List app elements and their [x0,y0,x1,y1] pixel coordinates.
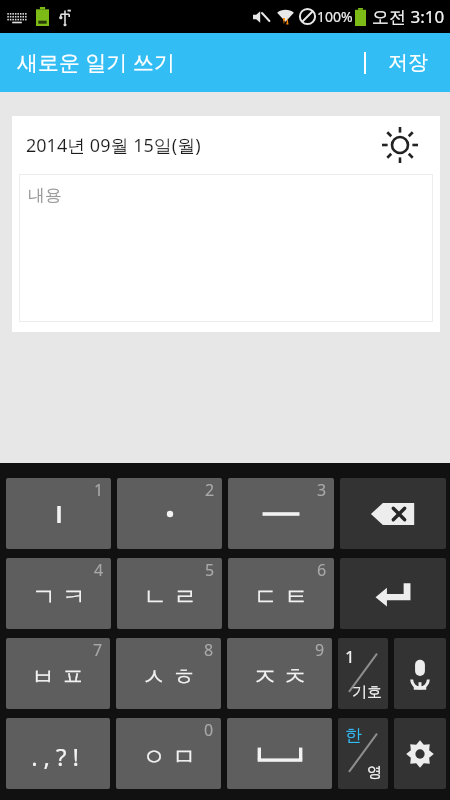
button[interactable]: 내용 [19,174,433,322]
staticText: 3 [317,479,327,501]
button[interactable]: 날씨 선택 [378,123,422,167]
staticText: 7 [93,639,103,661]
staticText: 오전 3:10 [372,5,445,28]
button[interactable]: 6 [228,558,334,629]
staticText: 4 [94,559,104,581]
staticText: 6 [317,559,327,581]
button[interactable]: 1 [6,478,111,549]
staticText: 2014년 09월 15일(월) [26,133,201,158]
button[interactable]: 저장 [366,36,450,89]
staticText: 1 [94,479,104,501]
button[interactable]: Settings [394,718,446,789]
button[interactable]: 0 [116,718,221,789]
staticText: 8 [204,639,214,661]
staticText: ㄴㄹ [140,582,200,612]
staticText: 저장 [388,50,428,75]
staticText: .,?! [31,740,85,773]
button[interactable]: Backspace [340,478,446,549]
staticText: ㅅㅎ [139,662,199,692]
button[interactable]: 1 [338,638,388,709]
staticText: 5 [205,559,215,581]
button[interactable]: Voice input [394,638,446,709]
staticText: 한 [345,725,362,746]
staticText: ㅂㅍ [28,662,88,692]
button[interactable]: 5 [117,558,222,629]
staticText: 내용 [28,185,62,206]
staticText: 1 [345,645,355,668]
staticText: 영 [367,763,382,782]
staticText: 9 [315,639,325,661]
staticText: 새로운 일기 쓰기 [17,48,175,77]
button[interactable]: Space [227,718,332,789]
staticText: 2 [205,479,215,501]
button[interactable]: 7 [6,638,110,709]
staticText: ㄱㅋ [29,582,89,612]
button[interactable]: 한 [338,718,388,789]
staticText: ㅈㅊ [250,662,310,692]
staticText: ㄷㅌ [251,582,311,612]
staticText: 기호 [352,683,382,702]
button[interactable]: 3 [228,478,334,549]
button[interactable]: .,?! [6,718,110,789]
button[interactable]: 8 [116,638,221,709]
staticText: ㅇㅁ [139,742,199,772]
staticText: 100% [317,7,353,26]
button[interactable]: 9 [227,638,332,709]
button[interactable]: 2 [117,478,222,549]
staticText: 0 [204,719,214,741]
button[interactable]: 4 [6,558,111,629]
button[interactable]: Enter [340,558,446,629]
